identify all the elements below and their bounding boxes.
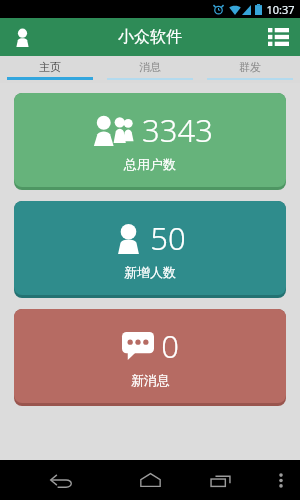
staticText: 新消息	[131, 372, 170, 388]
button[interactable]: Back	[41, 460, 81, 500]
staticText: 群发	[239, 60, 261, 74]
button[interactable]: 50	[14, 201, 286, 298]
staticText: 0	[161, 325, 179, 367]
button[interactable]: 0	[14, 309, 286, 406]
staticText: 新增人数	[124, 264, 176, 280]
button[interactable]: List view	[256, 18, 300, 56]
staticText: 50	[150, 217, 186, 259]
button[interactable]: Home	[130, 460, 170, 500]
staticText: 总用户数	[124, 156, 176, 172]
staticText: 3343	[142, 109, 213, 151]
button[interactable]: 3343	[14, 93, 286, 190]
staticText: 小众软件	[118, 27, 182, 47]
button[interactable]: 消息	[100, 56, 200, 83]
button[interactable]: More options	[268, 467, 294, 493]
staticText: 主页	[39, 60, 61, 74]
button[interactable]: 群发	[200, 56, 300, 83]
button[interactable]: Recent apps	[200, 460, 240, 500]
staticText: 消息	[139, 60, 161, 74]
button[interactable]: 主页	[0, 56, 100, 83]
button[interactable]: Profile	[0, 18, 44, 56]
staticText: 10:37	[266, 2, 295, 17]
